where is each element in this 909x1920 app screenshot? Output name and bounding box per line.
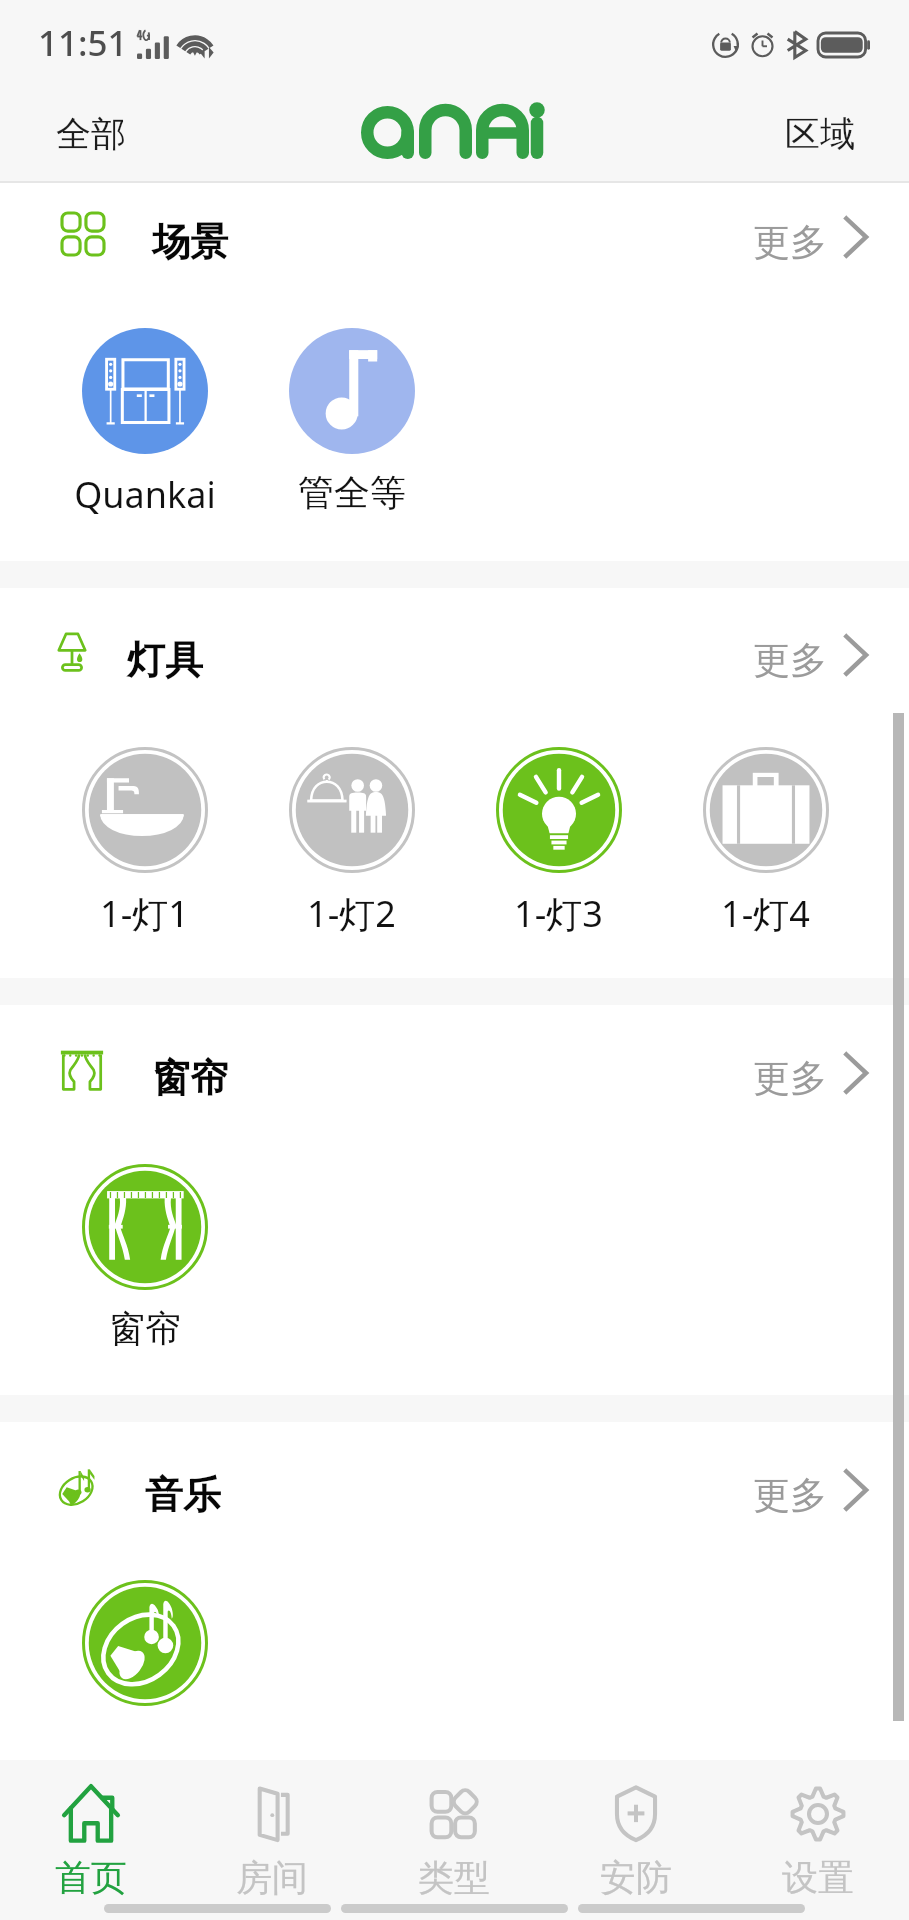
staticText: 1-灯2 <box>307 889 396 938</box>
button[interactable]: 更多 <box>737 619 874 686</box>
button[interactable]: 更多 <box>737 201 874 268</box>
staticText: 更多 <box>753 219 827 266</box>
staticText: 1-灯3 <box>514 889 603 938</box>
button[interactable]: 安防 <box>545 1760 727 1905</box>
button[interactable]: 更多 <box>737 1454 874 1521</box>
button[interactable]: Music player device <box>41 1580 248 1722</box>
staticText: 管全等 <box>298 470 406 515</box>
staticText: 更多 <box>753 1472 827 1519</box>
staticText: 安防 <box>600 1855 672 1900</box>
button[interactable]: 区域 <box>763 100 909 172</box>
button[interactable]: 1-灯3 <box>455 747 662 938</box>
button[interactable]: 类型 <box>363 1760 545 1905</box>
button[interactable]: 窗帘 <box>41 1164 248 1351</box>
button[interactable]: 首页 <box>0 1760 181 1905</box>
button[interactable]: 1-灯1 <box>41 747 248 938</box>
button[interactable]: 房间 <box>181 1760 363 1905</box>
staticText: 首页 <box>55 1855 127 1900</box>
staticText: 更多 <box>753 637 827 684</box>
button[interactable]: 设置 <box>727 1760 909 1905</box>
button[interactable]: 1-灯4 <box>662 747 869 938</box>
button[interactable]: Quankai <box>41 328 248 519</box>
staticText: 音乐 <box>145 1471 221 1519</box>
staticText: 房间 <box>236 1855 308 1900</box>
staticText: 1-灯4 <box>721 889 810 938</box>
staticText: 类型 <box>418 1855 490 1900</box>
staticText: 设置 <box>782 1855 854 1900</box>
staticText: 灯具 <box>127 636 203 684</box>
button[interactable]: 管全等 <box>248 328 455 515</box>
button[interactable]: 更多 <box>737 1037 874 1104</box>
button[interactable]: 1-灯2 <box>248 747 455 938</box>
staticText: 窗帘 <box>109 1306 181 1351</box>
staticText: 1-灯1 <box>100 889 189 938</box>
button[interactable]: 全部 <box>0 100 148 172</box>
staticText: 更多 <box>753 1055 827 1102</box>
staticText: Quankai <box>74 470 216 519</box>
staticText: 场景 <box>152 218 228 266</box>
staticText: 11:51 <box>38 19 128 67</box>
staticText: 窗帘 <box>152 1054 228 1102</box>
